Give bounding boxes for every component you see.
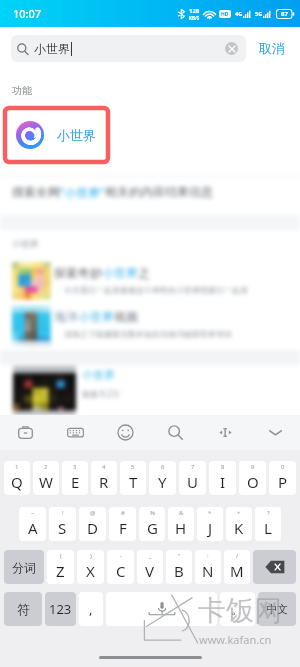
- button[interactable]: +: [226, 507, 252, 541]
- button[interactable]: 0: [269, 461, 296, 495]
- button[interactable]: Backspace: [253, 550, 296, 584]
- staticText: -: [120, 552, 122, 560]
- button[interactable]: :: [195, 550, 221, 584]
- button[interactable]: _: [137, 550, 163, 584]
- button[interactable]: 1: [4, 461, 30, 495]
- staticText: A: [28, 518, 38, 538]
- staticText: 分词: [12, 560, 36, 575]
- staticText: 今天我们一起来看看这个神奇的小世界吧家们一起来: [64, 285, 248, 295]
- staticText: Y: [158, 472, 167, 492]
- staticText: X: [86, 561, 95, 581]
- staticText: N: [202, 561, 214, 581]
- staticText: 视频: [114, 309, 138, 324]
- button[interactable]: Search: [150, 415, 200, 450]
- staticText: 卡饭网: [198, 593, 282, 628]
- staticText: !: [62, 509, 64, 517]
- button[interactable]: 符: [4, 592, 42, 626]
- staticText: 。: [231, 601, 244, 617]
- button[interactable]: 7: [179, 461, 206, 495]
- button[interactable]: 6: [149, 461, 176, 495]
- staticText: 9: [251, 463, 255, 471]
- button[interactable]: -: [107, 550, 134, 584]
- button[interactable]: &: [168, 507, 194, 541]
- button[interactable]: *: [197, 507, 223, 541]
- staticText: 深海之下隐藏着无数未知的生物与秘密世界等你: [64, 329, 232, 339]
- staticText: Z: [56, 561, 65, 581]
- button[interactable]: (: [47, 550, 74, 584]
- staticText: M: [230, 561, 244, 581]
- button[interactable]: #: [109, 507, 136, 541]
- staticText: 2: [44, 463, 48, 471]
- staticText: B: [174, 561, 184, 581]
- button[interactable]: 2: [33, 461, 59, 495]
- staticText: Q: [11, 472, 23, 492]
- staticText: ?: [267, 509, 270, 517]
- button[interactable]: Emoji: [100, 415, 150, 450]
- button[interactable]: ~: [19, 507, 46, 541]
- staticText: 小世界: [57, 127, 96, 143]
- staticText: 7: [191, 463, 195, 471]
- staticText: 128: [189, 7, 200, 15]
- staticText: 中文: [266, 602, 288, 616]
- staticText: (: [60, 552, 62, 560]
- button[interactable]: Move cursor: [200, 415, 250, 450]
- staticText: 3: [73, 463, 77, 471]
- button[interactable]: 取消: [259, 27, 285, 69]
- button[interactable]: 分词: [4, 550, 44, 584]
- staticText: 探索奇妙: [54, 265, 102, 280]
- staticText: ,: [89, 600, 93, 618]
- button[interactable]: /: [224, 550, 250, 584]
- button[interactable]: Hide keyboard: [250, 415, 300, 450]
- button[interactable]: Clear text: [225, 42, 238, 55]
- button[interactable]: 9: [239, 461, 266, 495]
- button[interactable]: %: [139, 507, 165, 541]
- button[interactable]: Space: [106, 592, 217, 626]
- button[interactable]: Clipboard: [0, 415, 50, 450]
- button[interactable]: 8: [209, 461, 236, 495]
- staticText: &: [179, 509, 184, 517]
- button[interactable]: 4: [91, 461, 117, 495]
- staticText: ~: [31, 509, 35, 517]
- staticText: ): [90, 552, 92, 560]
- staticText: +: [237, 509, 241, 517]
- button[interactable]: 5: [120, 461, 146, 495]
- staticText: 4G: [235, 10, 243, 17]
- button[interactable]: !: [49, 507, 76, 541]
- staticText: @: [90, 509, 96, 517]
- staticText: 1: [15, 463, 19, 471]
- staticText: K: [234, 518, 244, 538]
- staticText: 小世界: [102, 265, 138, 280]
- staticText: #: [121, 509, 125, 517]
- staticText: KB/S: [189, 15, 200, 21]
- button[interactable]: ): [77, 550, 104, 584]
- staticText: 10:07: [13, 6, 42, 21]
- staticText: :: [207, 552, 209, 560]
- button[interactable]: 小世界: [11, 35, 246, 62]
- button[interactable]: 123: [45, 592, 76, 626]
- staticText: 4: [102, 463, 106, 471]
- staticText: 123: [49, 600, 72, 618]
- button[interactable]: ": [166, 550, 192, 584]
- staticText: H: [175, 518, 187, 538]
- staticText: 相关的内容结果信息: [105, 184, 213, 199]
- staticText: www.kafan.cn: [199, 632, 272, 647]
- staticText: ": [178, 552, 181, 560]
- button[interactable]: @: [79, 507, 106, 541]
- staticText: F: [119, 518, 127, 538]
- staticText: G: [147, 518, 158, 538]
- staticText: C: [116, 561, 126, 581]
- staticText: 8: [221, 463, 225, 471]
- button[interactable]: 。: [220, 592, 255, 626]
- staticText: E: [71, 472, 80, 492]
- button[interactable]: 小世界: [0, 106, 300, 164]
- staticText: 5: [131, 463, 135, 471]
- staticText: 小世界: [34, 41, 70, 56]
- staticText: D: [87, 518, 98, 538]
- button[interactable]: ?: [255, 507, 281, 541]
- staticText: 小世界: [82, 368, 115, 382]
- button[interactable]: 中文: [258, 592, 296, 626]
- staticText: L: [264, 518, 272, 538]
- button[interactable]: Keyboard layout: [50, 415, 100, 450]
- button[interactable]: ,: [79, 592, 103, 626]
- button[interactable]: 3: [62, 461, 88, 495]
